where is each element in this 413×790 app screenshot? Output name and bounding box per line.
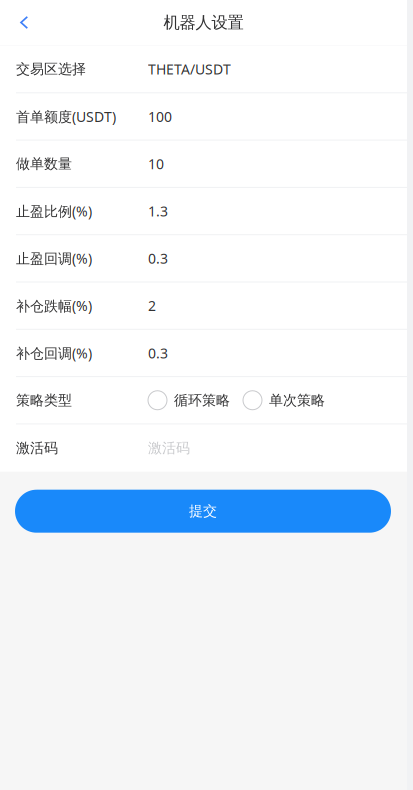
staticText: 循环策略	[174, 391, 230, 409]
staticText: 机器人设置	[163, 12, 243, 33]
staticText: 补仓跌幅(%)	[16, 296, 92, 315]
button[interactable]: 单次策略	[243, 391, 325, 410]
staticText: 单次策略	[269, 391, 325, 409]
staticText: 止盈比例(%)	[16, 201, 92, 221]
button[interactable]: 提交	[15, 490, 391, 533]
staticText: 做单数量	[16, 155, 72, 172]
button[interactable]: 止盈回调(%)	[0, 235, 407, 282]
button[interactable]: 补仓跌幅(%)	[0, 282, 407, 330]
staticText: THETA/USDT	[148, 60, 231, 79]
staticText: 交易区选择	[16, 60, 86, 78]
staticText: 0.3	[148, 343, 168, 362]
staticText: 0.3	[148, 249, 168, 268]
button[interactable]: 止盈比例(%)	[0, 188, 407, 235]
button[interactable]: 交易区选择	[0, 46, 407, 93]
staticText: 2	[148, 296, 156, 315]
staticText: 首单额度(USDT)	[16, 107, 116, 126]
staticText: 止盈回调(%)	[16, 249, 92, 268]
button[interactable]: 循环策略	[148, 391, 230, 410]
staticText: 100	[148, 107, 172, 126]
staticText: 策略类型	[16, 391, 72, 409]
staticText: 激活码	[148, 439, 190, 457]
button[interactable]: 补仓回调(%)	[0, 330, 407, 377]
staticText: 激活码	[16, 439, 58, 457]
button[interactable]: 首单额度(USDT)	[0, 93, 407, 141]
staticText: 补仓回调(%)	[16, 343, 92, 362]
button[interactable]: 做单数量	[0, 141, 407, 188]
button[interactable]: 激活码	[0, 424, 407, 472]
staticText: 10	[148, 154, 164, 173]
button[interactable]: 返回	[0, 0, 56, 45]
staticText: 1.3	[148, 201, 168, 221]
staticText: 提交	[189, 502, 217, 520]
